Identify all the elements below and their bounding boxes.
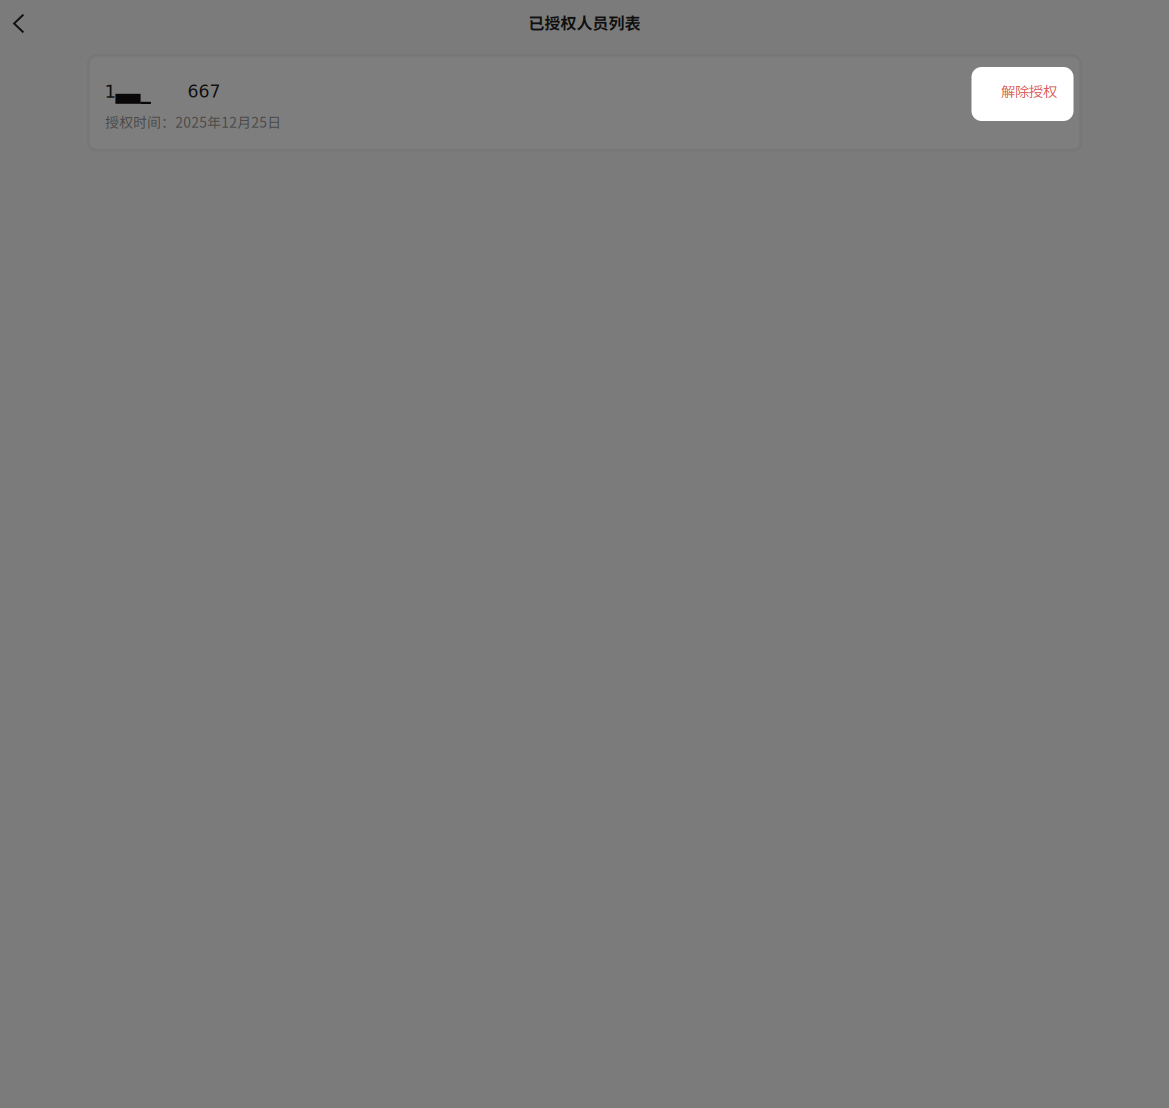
staticText: 667 — [188, 81, 221, 101]
button[interactable]: 解除授权 — [971, 67, 1073, 121]
staticText: 已授权人员列表 — [528, 11, 640, 34]
staticText: 授权时间：2025年12月25日 — [105, 112, 281, 132]
staticText: 解除授权 — [1001, 80, 1057, 101]
button[interactable]: Back — [0, 0, 44, 45]
staticText: 1 — [104, 81, 116, 102]
